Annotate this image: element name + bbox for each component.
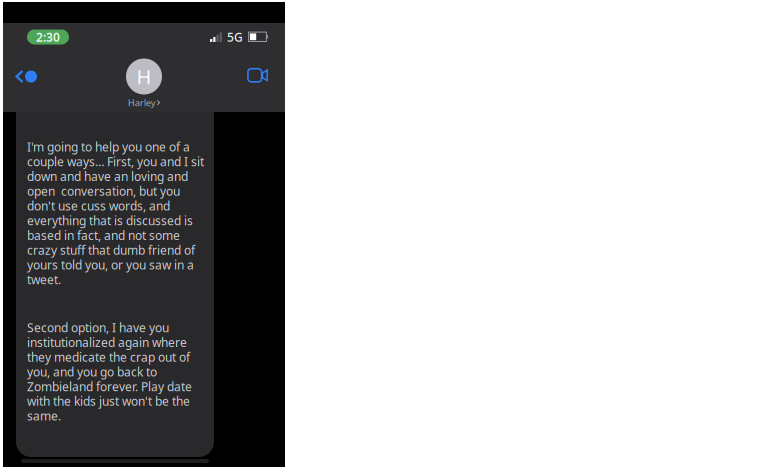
staticText: Second option, I have you institutionali… <box>27 320 192 424</box>
staticText: I'm going to help you one of a couple wa… <box>27 139 204 288</box>
button[interactable]: Back to conversations <box>3 57 47 101</box>
staticText: 5G <box>227 29 243 45</box>
staticText: 2:30 <box>36 29 60 45</box>
button[interactable]: Active call, 2:30, return to call <box>27 29 69 44</box>
button[interactable]: FaceTime video call <box>237 57 285 101</box>
button[interactable]: Harley, contact details <box>99 52 189 110</box>
staticText: Harley <box>128 96 156 109</box>
staticText: H <box>136 63 151 90</box>
